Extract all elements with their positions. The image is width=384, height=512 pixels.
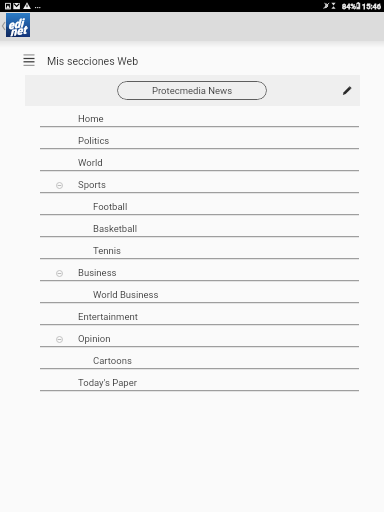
- staticText: 15:46: [362, 2, 382, 11]
- button[interactable]: Business: [0, 259, 384, 281]
- staticText: Cartoons: [93, 355, 132, 366]
- button[interactable]: Today's Paper: [0, 369, 384, 391]
- button[interactable]: Tennis: [0, 237, 384, 259]
- staticText: Today's Paper: [78, 377, 137, 388]
- button[interactable]: App icon: [6, 13, 30, 37]
- button[interactable]: Edit sections: [336, 80, 358, 102]
- staticText: World: [78, 157, 103, 168]
- staticText: Sports: [78, 179, 106, 190]
- button[interactable]: Politics: [0, 127, 384, 149]
- staticText: Football: [93, 201, 128, 212]
- staticText: Home: [78, 113, 104, 124]
- staticText: World Business: [93, 289, 159, 300]
- button[interactable]: Protecmedia News: [117, 81, 267, 100]
- staticText: net: [9, 23, 28, 38]
- staticText: Entertainment: [78, 311, 138, 322]
- button[interactable]: Cartoons: [0, 347, 384, 369]
- staticText: Basketball: [93, 223, 137, 234]
- button[interactable]: World Business: [0, 281, 384, 303]
- staticText: Business: [78, 267, 117, 278]
- button[interactable]: Entertainment: [0, 303, 384, 325]
- staticText: Mis secciones Web: [47, 55, 139, 67]
- button[interactable]: World: [0, 149, 384, 171]
- button[interactable]: Home: [0, 105, 384, 127]
- staticText: Protecmedia News: [152, 85, 233, 96]
- staticText: edi: [7, 16, 25, 31]
- staticText: Opinion: [78, 333, 111, 344]
- button[interactable]: Basketball: [0, 215, 384, 237]
- staticText: Politics: [78, 135, 110, 146]
- button[interactable]: Football: [0, 193, 384, 215]
- staticText: 84%: [342, 2, 357, 11]
- button[interactable]: Sports: [0, 171, 384, 193]
- button[interactable]: Opinion: [0, 325, 384, 347]
- staticText: Tennis: [93, 245, 121, 256]
- button[interactable]: Open navigation menu: [17, 48, 41, 72]
